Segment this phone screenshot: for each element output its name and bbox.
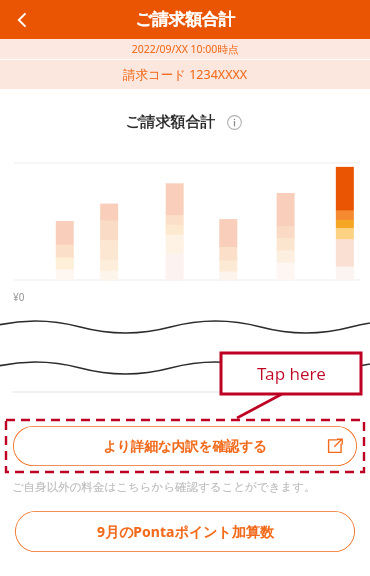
button[interactable]: Information — [223, 111, 245, 133]
staticText: 請求コード 1234XXXX — [0, 66, 370, 83]
button[interactable]: 9月のPontaポイント加算数 — [15, 511, 355, 552]
button[interactable]: より詳細な内訳を確認する — [13, 426, 357, 466]
staticText: 2022/09/XX 10:00時点 — [0, 42, 370, 56]
staticText: Tap here — [257, 362, 326, 385]
staticText: ご請求額合計 — [0, 9, 370, 30]
staticText: ¥0 — [13, 290, 25, 304]
staticText: ご請求額合計 — [125, 113, 216, 132]
button[interactable]: Tap here — [221, 353, 361, 394]
staticText: より詳細な内訳を確認する — [103, 438, 267, 455]
button[interactable]: Back — [0, 0, 44, 39]
staticText: 9月のPontaポイント加算数 — [97, 522, 274, 541]
staticText: ご自身以外の料金はこちらから確認することができます。 — [12, 480, 316, 494]
